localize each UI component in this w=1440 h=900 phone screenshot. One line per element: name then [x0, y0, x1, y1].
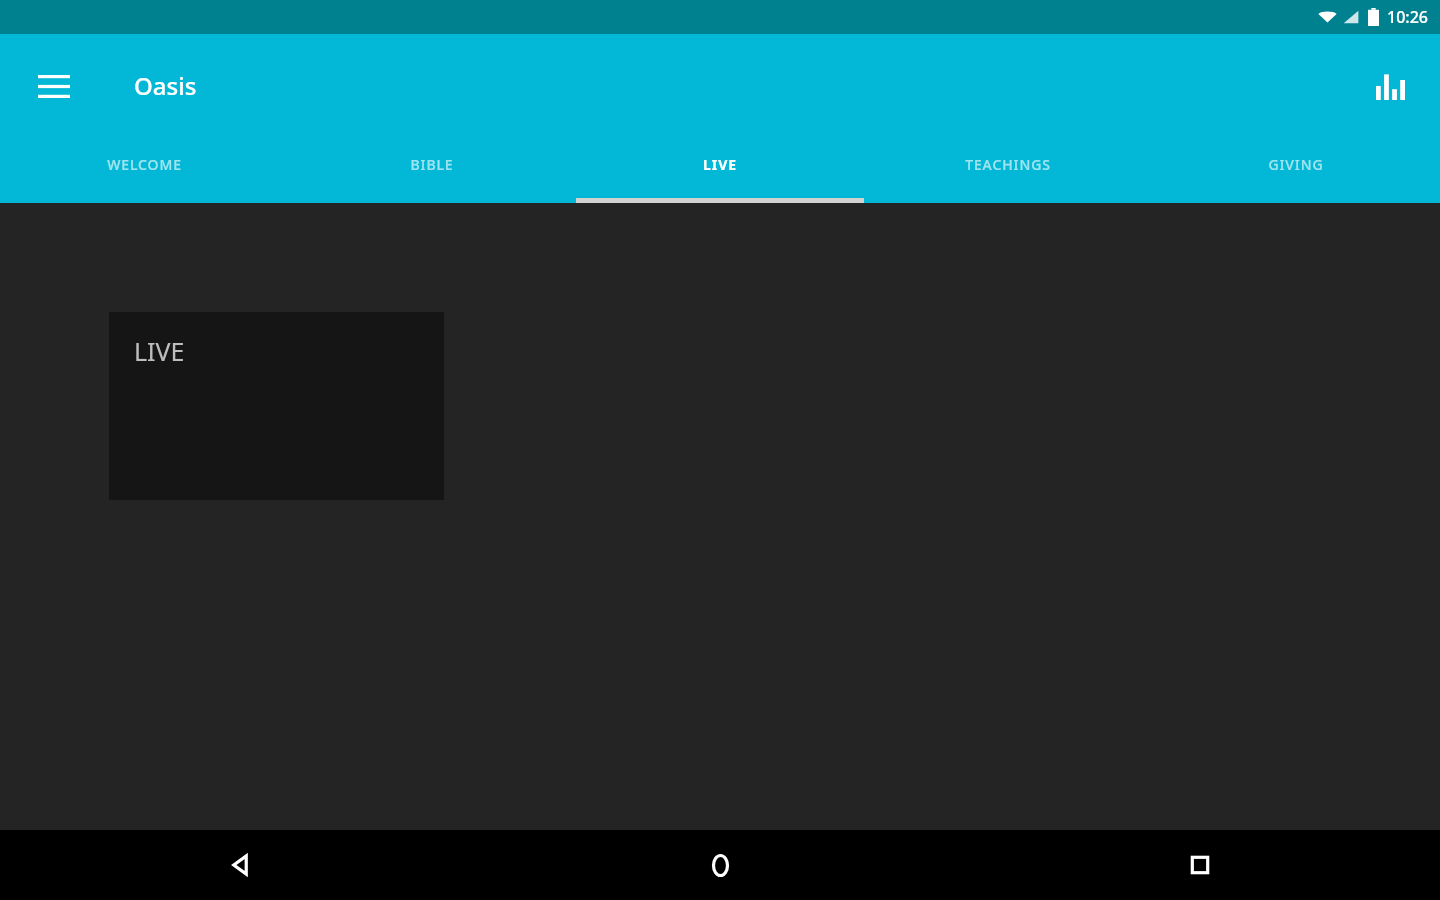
button[interactable]: LIVE: [576, 137, 864, 203]
button[interactable]: Recent apps: [960, 830, 1440, 900]
staticText: Oasis: [134, 69, 197, 102]
button[interactable]: GIVING: [1152, 137, 1440, 203]
button[interactable]: Home: [480, 830, 960, 900]
button[interactable]: WELCOME: [0, 137, 288, 203]
staticText: LIVE: [703, 155, 737, 174]
staticText: TEACHINGS: [965, 155, 1051, 174]
button[interactable]: Statistics: [1360, 56, 1420, 116]
staticText: 10:26: [1387, 6, 1428, 28]
button[interactable]: BIBLE: [288, 137, 576, 203]
button[interactable]: TEACHINGS: [864, 137, 1152, 203]
staticText: BIBLE: [410, 155, 454, 174]
staticText: WELCOME: [107, 155, 182, 174]
button[interactable]: LIVE: [109, 312, 444, 500]
staticText: LIVE: [134, 334, 185, 368]
staticText: GIVING: [1268, 155, 1324, 174]
button[interactable]: Back: [0, 830, 480, 900]
button[interactable]: Open navigation drawer: [22, 54, 86, 118]
